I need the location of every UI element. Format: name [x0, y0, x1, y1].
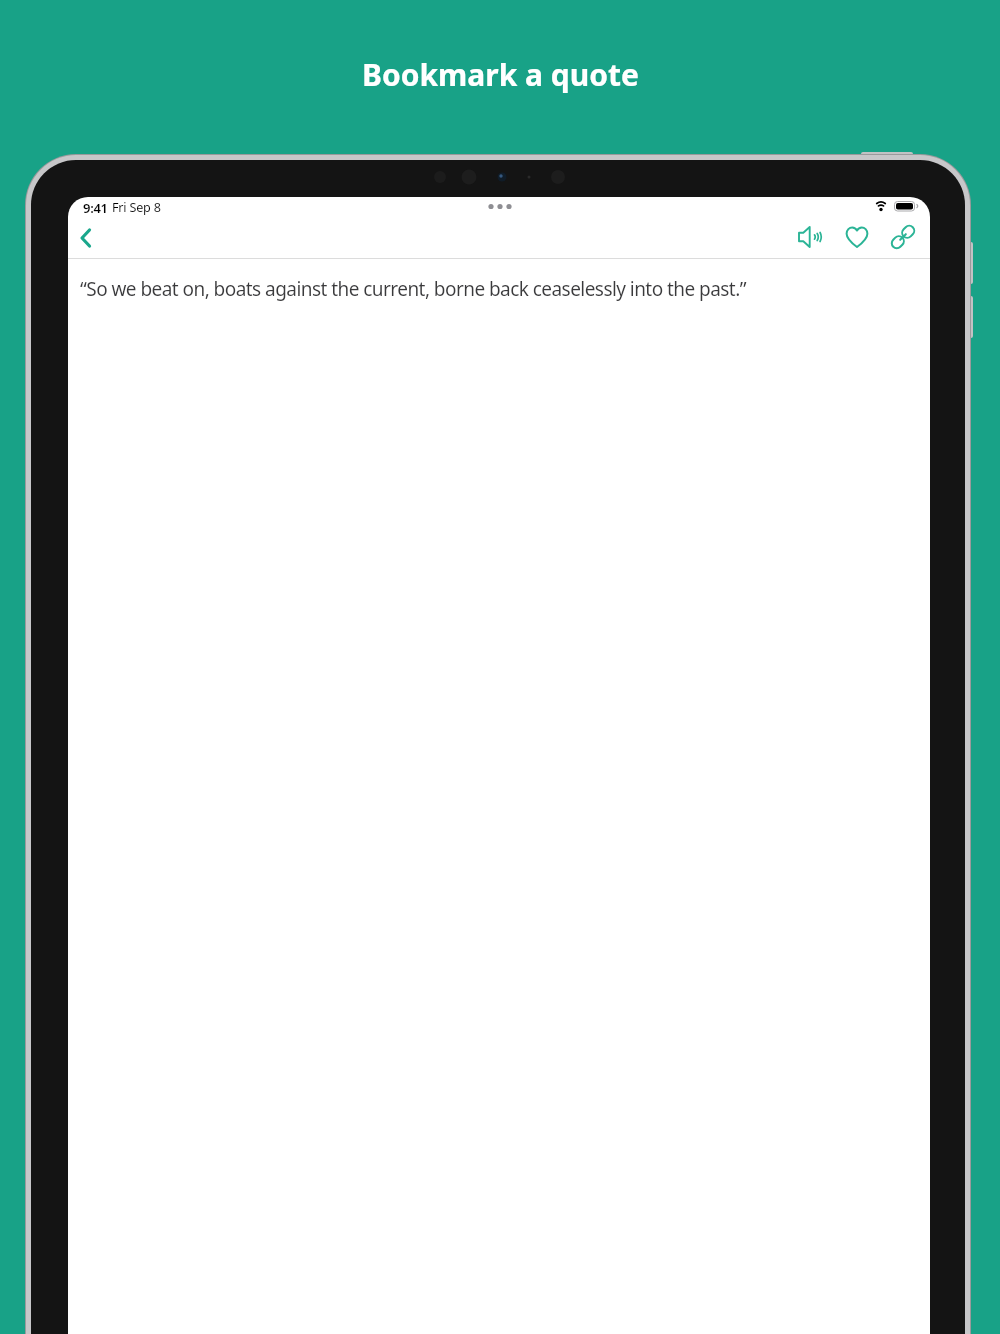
button[interactable] — [841, 221, 873, 253]
staticText: Fri Sep 8 — [112, 199, 161, 216]
button[interactable] — [887, 221, 919, 253]
button[interactable] — [70, 221, 104, 255]
staticText: “So we beat on, boats against the curren… — [80, 276, 746, 302]
button[interactable] — [793, 221, 825, 253]
staticText: 9:41 — [83, 199, 108, 217]
staticText: Bookmark a quote — [362, 54, 639, 95]
